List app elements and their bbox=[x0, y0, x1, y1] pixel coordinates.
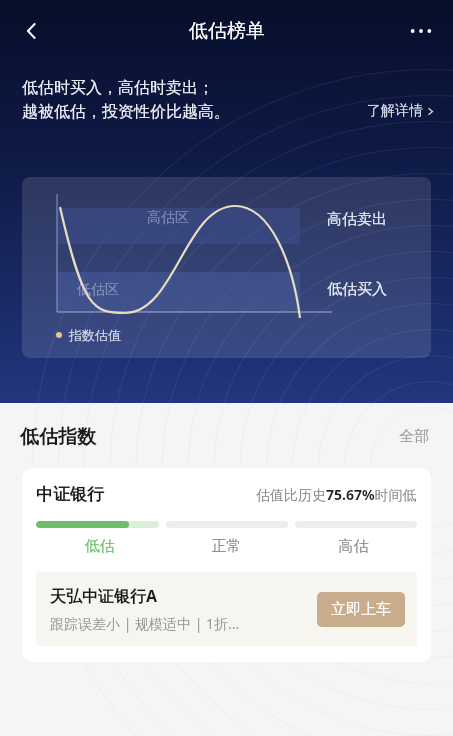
staticText: 低估时买入，高估时卖出； bbox=[22, 78, 214, 98]
staticText: 低估买入 bbox=[327, 280, 387, 299]
button[interactable]: Back bbox=[10, 9, 54, 53]
staticText: 越被低估，投资性价比越高。 bbox=[22, 102, 230, 122]
button[interactable]: 了解详情 bbox=[361, 98, 435, 122]
staticText: 低估指数 bbox=[20, 425, 96, 449]
staticText: 指数估值 bbox=[69, 327, 121, 343]
staticText: 高估区 bbox=[147, 209, 189, 227]
staticText: 中证银行 bbox=[36, 484, 104, 505]
staticText: 跟踪误差小 | 规模适中 | 1折... bbox=[50, 614, 240, 633]
staticText: 全部 bbox=[399, 427, 429, 446]
staticText: 低估榜单 bbox=[189, 19, 265, 43]
staticText: 估值比历史75.67%时间低 bbox=[256, 485, 417, 504]
staticText: 了解详情 bbox=[367, 102, 423, 120]
staticText: 高估卖出 bbox=[327, 210, 387, 229]
staticText: 高估 bbox=[290, 537, 417, 556]
button[interactable]: More options bbox=[399, 9, 443, 53]
button[interactable]: 中证银行 bbox=[22, 468, 431, 662]
button[interactable]: 立即上车 bbox=[317, 592, 405, 627]
button[interactable]: 天弘中证银行A bbox=[36, 572, 417, 646]
staticText: 立即上车 bbox=[331, 600, 391, 619]
staticText: 低估区 bbox=[77, 281, 119, 299]
staticText: 正常 bbox=[163, 537, 290, 556]
button[interactable]: 全部 bbox=[395, 423, 433, 450]
staticText: 天弘中证银行A bbox=[50, 585, 158, 607]
staticText: 低估 bbox=[36, 537, 163, 556]
